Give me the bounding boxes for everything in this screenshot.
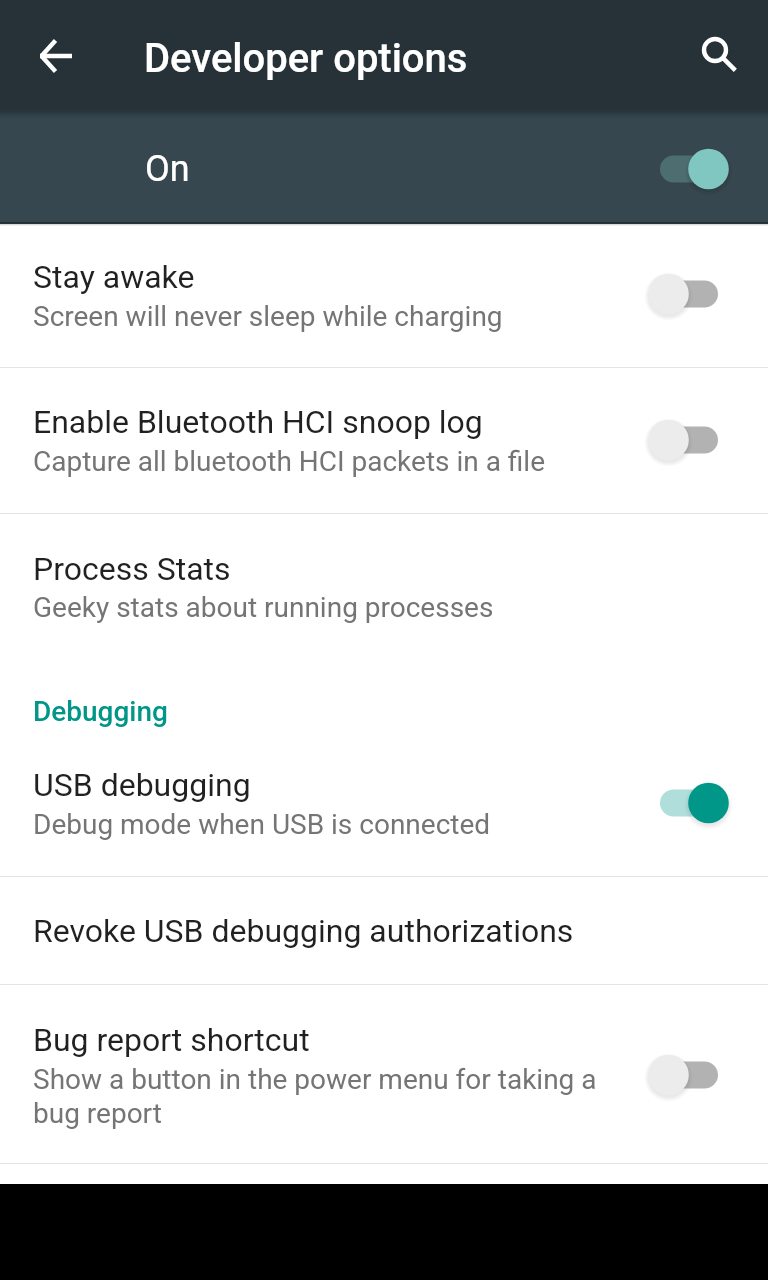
staticText: Process Stats bbox=[33, 550, 231, 588]
button[interactable]: Bug report shortcut bbox=[0, 985, 768, 1163]
staticText: Show a button in the power menu for taki… bbox=[33, 1063, 597, 1096]
button[interactable]: Bug report shortcut, off bbox=[644, 1046, 736, 1102]
staticText: USB debugging bbox=[33, 766, 251, 804]
staticText: Bug report shortcut bbox=[33, 1021, 310, 1059]
button[interactable]: Stay awake bbox=[0, 224, 768, 367]
button[interactable]: Revoke USB debugging authorizations bbox=[0, 877, 768, 984]
staticText: Developer options bbox=[144, 35, 468, 82]
button[interactable]: Stay awake, off bbox=[644, 265, 736, 321]
staticText: Enable Bluetooth HCI snoop log bbox=[33, 403, 483, 441]
staticText: Geeky stats about running processes bbox=[33, 591, 494, 624]
button[interactable]: Navigate up bbox=[24, 24, 88, 88]
button[interactable]: USB debugging bbox=[0, 723, 768, 876]
staticText: Screen will never sleep while charging bbox=[33, 300, 503, 333]
button[interactable]: USB debugging, on bbox=[644, 774, 736, 830]
button[interactable]: Search bbox=[683, 18, 747, 82]
button[interactable]: Enable Bluetooth HCI snoop log, off bbox=[644, 411, 736, 467]
staticText: Debug mode when USB is connected bbox=[33, 808, 491, 841]
staticText: Revoke USB debugging authorizations bbox=[33, 912, 574, 950]
button[interactable]: On bbox=[0, 112, 768, 224]
staticText: Stay awake bbox=[33, 258, 195, 296]
button[interactable]: Process Stats bbox=[0, 514, 768, 666]
staticText: Debugging bbox=[33, 695, 168, 728]
staticText: On bbox=[145, 148, 190, 190]
staticText: bug report bbox=[33, 1097, 162, 1130]
staticText: Capture all bluetooth HCI packets in a f… bbox=[33, 445, 546, 478]
button[interactable]: Enable Bluetooth HCI snoop log bbox=[0, 368, 768, 513]
